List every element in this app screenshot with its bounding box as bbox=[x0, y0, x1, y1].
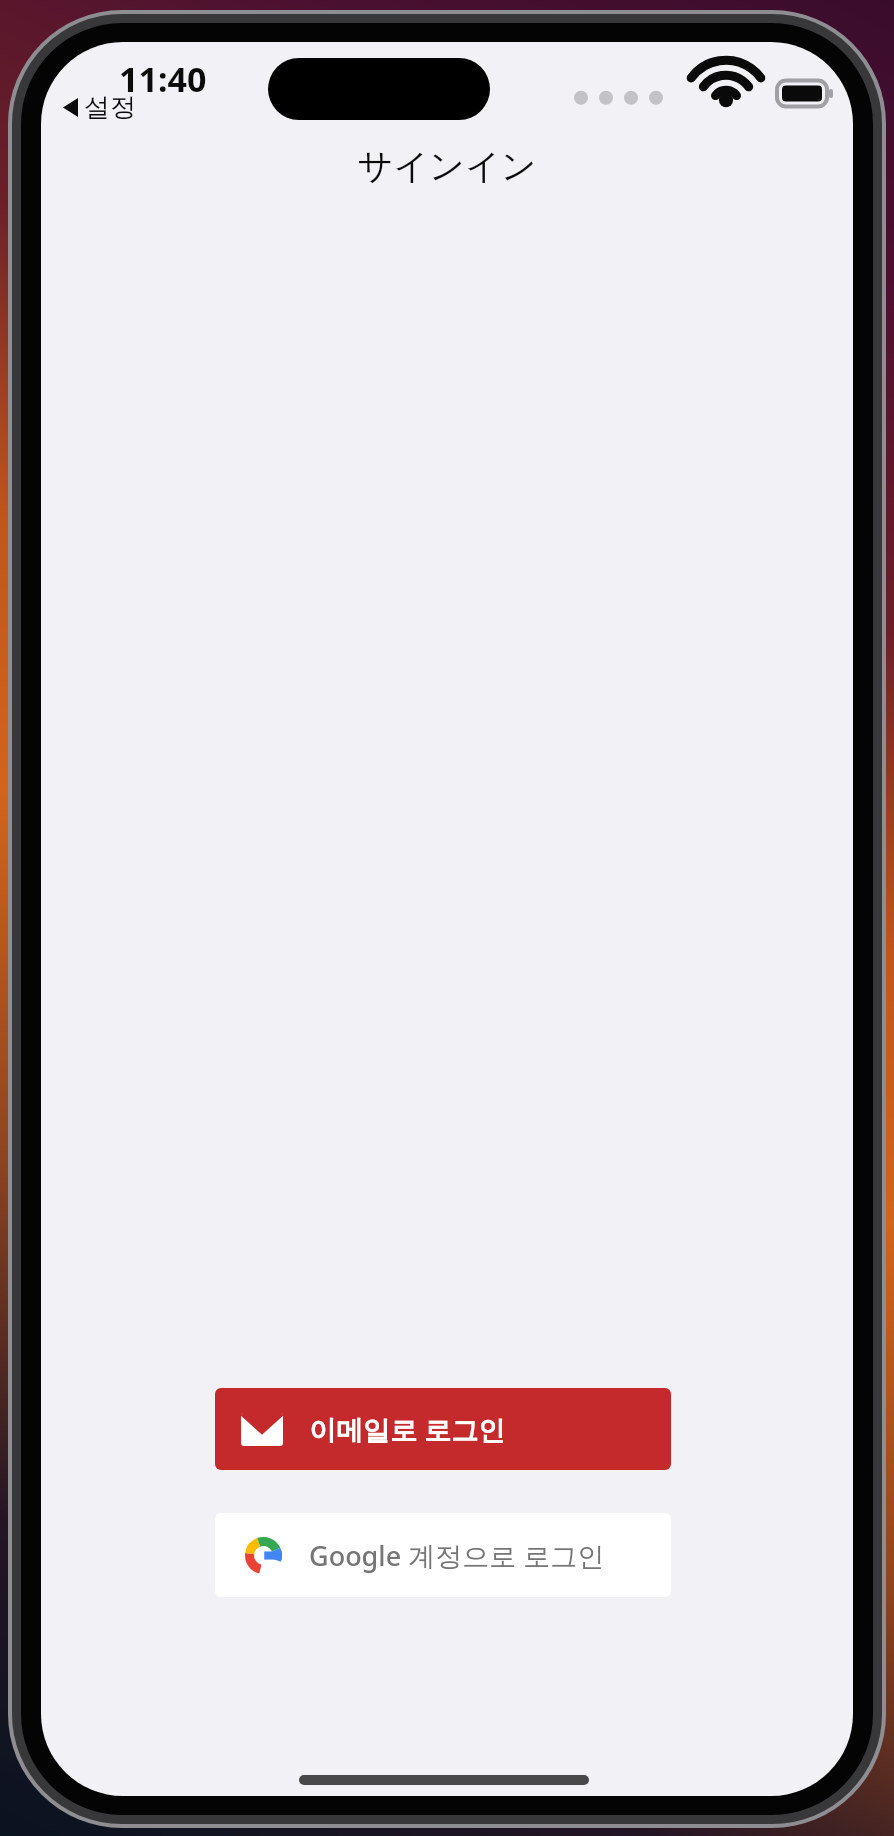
other: Status icons bbox=[519, 60, 819, 114]
button[interactable]: 설정 bbox=[59, 88, 140, 127]
staticText: 설정 bbox=[84, 91, 136, 124]
staticText: サインイン bbox=[41, 144, 853, 1796]
button[interactable]: Google 계정으로 로그인 bbox=[215, 1513, 671, 1597]
staticText: 11:40 bbox=[119, 56, 207, 102]
staticText: 이메일로 로그인 bbox=[309, 1411, 506, 1448]
staticText: Google 계정으로 로그인 bbox=[309, 1537, 605, 1574]
button[interactable]: 이메일로 로그인 bbox=[215, 1388, 671, 1470]
